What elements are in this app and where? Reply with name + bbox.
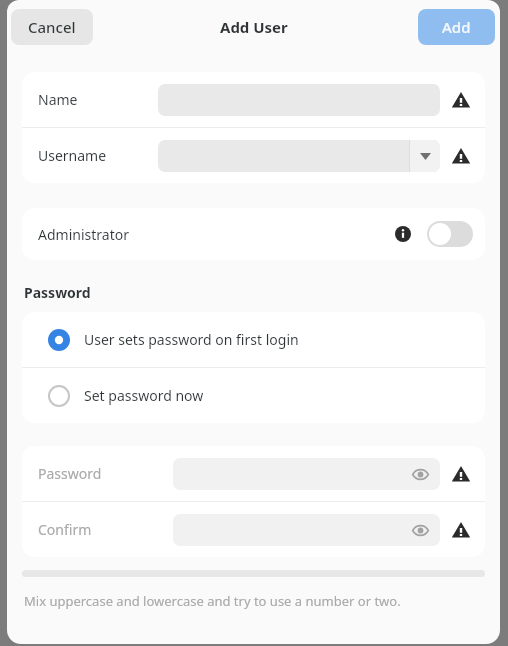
button[interactable]: Confirm xyxy=(22,502,485,557)
button[interactable]: Show password xyxy=(173,514,440,546)
staticText: Add User xyxy=(220,17,288,37)
staticText: Administrator xyxy=(38,225,129,244)
button[interactable]: Show password xyxy=(173,458,440,490)
staticText: Add xyxy=(442,17,471,37)
button[interactable]: Warning xyxy=(448,461,474,487)
staticText: Name xyxy=(38,90,78,109)
button[interactable]: Warning xyxy=(448,517,474,543)
staticText: Set password now xyxy=(84,386,204,405)
button[interactable]: Warning xyxy=(448,87,474,113)
button[interactable]: Warning xyxy=(448,143,474,169)
button[interactable]: Show suggestions xyxy=(410,140,440,172)
staticText: Username xyxy=(38,146,107,165)
button[interactable]: Administrator xyxy=(22,208,485,260)
button[interactable]: Cancel xyxy=(11,9,93,45)
button[interactable]: Show suggestions xyxy=(158,140,440,172)
staticText: User sets password on first login xyxy=(84,330,299,349)
button[interactable]: Show password xyxy=(408,518,432,542)
button[interactable]: Username xyxy=(22,128,485,183)
button[interactable]: Set password now xyxy=(22,368,485,423)
staticText: Cancel xyxy=(28,17,76,37)
button[interactable]: Name xyxy=(22,72,485,127)
button[interactable]: Administrator toggle xyxy=(427,221,473,247)
staticText: Confirm xyxy=(38,520,92,539)
button[interactable]: Password xyxy=(22,446,485,501)
staticText: Password xyxy=(24,283,91,302)
staticText: Mix uppercase and lowercase and try to u… xyxy=(24,592,401,610)
button[interactable]: More information xyxy=(391,222,415,246)
button[interactable]: User sets password on first login xyxy=(22,312,485,367)
staticText: Password xyxy=(38,464,102,483)
button[interactable]: Show password xyxy=(408,462,432,486)
button[interactable]: Add xyxy=(418,9,495,45)
